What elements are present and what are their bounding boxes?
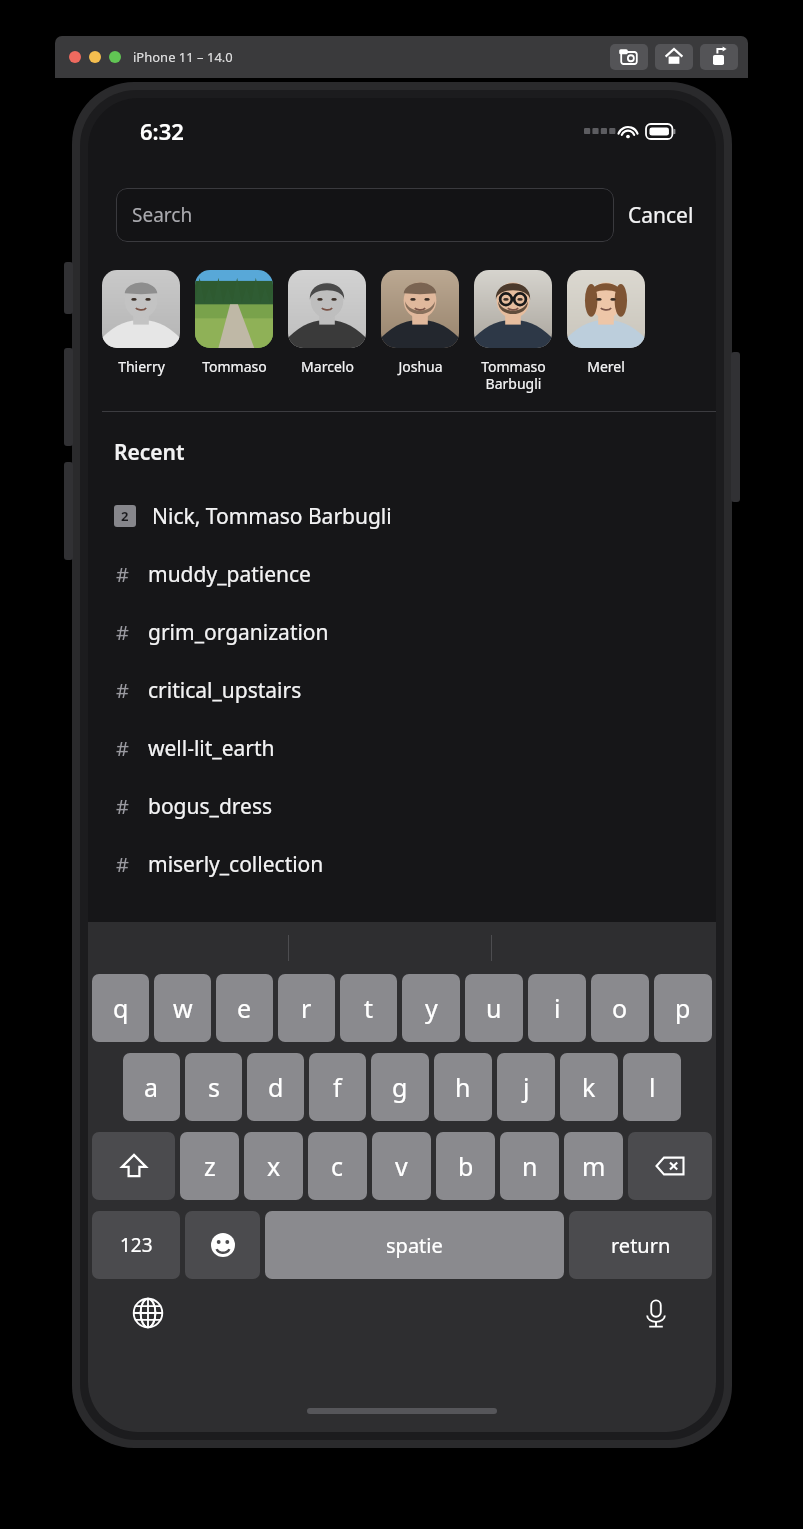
button[interactable]: n — [500, 1132, 559, 1200]
button[interactable]: Backspace — [628, 1132, 712, 1200]
button[interactable]: e — [216, 974, 273, 1042]
staticText: well-lit_earth — [148, 734, 275, 763]
button[interactable]: g — [371, 1053, 429, 1121]
staticText: # — [116, 619, 136, 646]
staticText: # — [116, 851, 136, 878]
staticText: Thierry — [118, 357, 165, 376]
staticText: muddy_patience — [148, 560, 311, 589]
staticText: p — [675, 991, 691, 1025]
button[interactable]: Marcelo — [286, 270, 368, 376]
button[interactable]: # — [88, 661, 716, 719]
staticText: n — [522, 1149, 538, 1183]
staticText: 2 — [121, 507, 129, 525]
staticText: iPhone 11 – 14.0 — [133, 48, 233, 66]
staticText: o — [612, 991, 628, 1025]
staticText: w — [173, 991, 193, 1025]
button[interactable]: Cancel — [628, 201, 694, 230]
staticText: bogus_dress — [148, 792, 273, 821]
staticText: j — [523, 1070, 530, 1104]
button[interactable]: d — [247, 1053, 304, 1121]
button[interactable]: Shift — [92, 1132, 175, 1200]
staticText: i — [554, 991, 561, 1025]
staticText: u — [486, 991, 502, 1025]
staticText: Cancel — [628, 201, 694, 230]
staticText: r — [301, 991, 312, 1025]
button[interactable]: v — [372, 1132, 431, 1200]
button[interactable]: # — [88, 603, 716, 661]
button[interactable]: o — [591, 974, 649, 1042]
staticText: # — [116, 677, 136, 704]
button[interactable]: Screenshot — [610, 44, 648, 70]
button[interactable]: Tommaso — [193, 270, 275, 376]
staticText: Search — [132, 202, 193, 228]
button[interactable]: return — [569, 1211, 712, 1279]
button[interactable]: f — [309, 1053, 366, 1121]
button[interactable]: Emoji — [185, 1211, 260, 1279]
button[interactable]: q — [92, 974, 149, 1042]
staticText: c — [331, 1149, 344, 1183]
staticText: Tommaso — [202, 357, 267, 376]
button[interactable]: p — [654, 974, 712, 1042]
staticText: s — [208, 1070, 220, 1104]
button[interactable]: y — [402, 974, 460, 1042]
staticText: Recent — [114, 438, 185, 467]
button[interactable]: b — [436, 1132, 495, 1200]
button[interactable]: c — [308, 1132, 367, 1200]
staticText: Marcelo — [301, 357, 354, 376]
button[interactable]: i — [528, 974, 586, 1042]
button[interactable]: k — [560, 1053, 618, 1121]
button[interactable]: z — [180, 1132, 239, 1200]
button[interactable]: Tommaso Barbugli — [472, 270, 554, 393]
staticText: # — [116, 793, 136, 820]
staticText: critical_upstairs — [148, 676, 302, 705]
button[interactable]: Home — [655, 44, 693, 70]
button[interactable]: # — [88, 719, 716, 777]
staticText: l — [649, 1070, 656, 1104]
staticText: 123 — [120, 1232, 153, 1258]
button[interactable]: l — [623, 1053, 681, 1121]
staticText: e — [237, 991, 252, 1025]
button[interactable]: # — [88, 777, 716, 835]
button[interactable]: Share — [700, 44, 738, 70]
button[interactable]: r — [278, 974, 335, 1042]
staticText: Tommaso Barbugli — [481, 357, 546, 393]
button[interactable]: h — [434, 1053, 492, 1121]
staticText: h — [455, 1070, 471, 1104]
staticText: f — [333, 1070, 342, 1104]
staticText: d — [268, 1070, 284, 1104]
button[interactable]: s — [185, 1053, 242, 1121]
button[interactable]: Thierry — [100, 270, 182, 376]
button[interactable]: 123 — [92, 1211, 180, 1279]
staticText: z — [204, 1149, 216, 1183]
staticText: grim_organization — [148, 618, 329, 647]
staticText: a — [144, 1070, 159, 1104]
staticText: return — [611, 1232, 671, 1259]
button[interactable]: 2 — [88, 487, 716, 545]
button[interactable]: a — [123, 1053, 180, 1121]
button[interactable]: spatie — [265, 1211, 564, 1279]
staticText: Merel — [587, 357, 625, 376]
button[interactable]: m — [564, 1132, 623, 1200]
button[interactable]: j — [497, 1053, 555, 1121]
button[interactable]: u — [465, 974, 523, 1042]
staticText: y — [425, 991, 438, 1025]
staticText: 6:32 — [140, 116, 184, 146]
button[interactable]: Change keyboard — [128, 1293, 168, 1333]
button[interactable]: Joshua — [379, 270, 461, 376]
staticText: q — [113, 991, 129, 1025]
button[interactable]: Dictate — [636, 1293, 676, 1333]
staticText: # — [116, 735, 136, 762]
button[interactable]: t — [340, 974, 397, 1042]
button[interactable]: Search — [116, 188, 614, 242]
button[interactable]: # — [88, 835, 716, 893]
staticText: t — [364, 991, 374, 1025]
staticText: b — [458, 1149, 474, 1183]
staticText: spatie — [386, 1232, 443, 1259]
button[interactable]: Merel — [565, 270, 647, 376]
button[interactable]: x — [244, 1132, 303, 1200]
staticText: m — [582, 1149, 606, 1183]
staticText: miserly_collection — [148, 850, 324, 879]
button[interactable]: w — [154, 974, 211, 1042]
button[interactable]: # — [88, 545, 716, 603]
staticText: g — [392, 1070, 408, 1104]
